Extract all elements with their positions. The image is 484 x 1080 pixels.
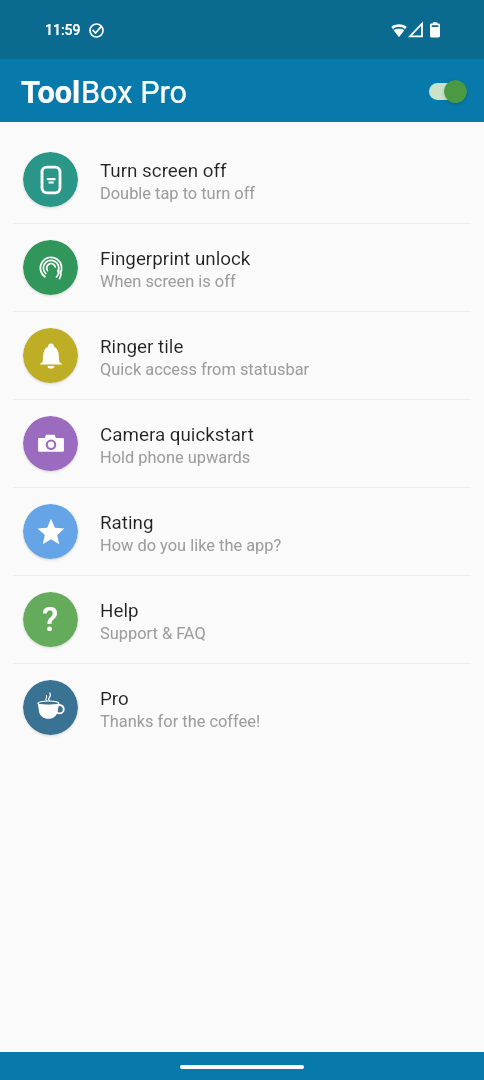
staticText: Turn screen off bbox=[100, 160, 227, 182]
staticText: Tool bbox=[21, 75, 81, 111]
staticText: Hold phone upwards bbox=[100, 448, 251, 467]
staticText: When screen is off bbox=[100, 272, 236, 291]
staticText: Thanks for the coffee! bbox=[100, 712, 261, 731]
button[interactable]: ? bbox=[0, 576, 484, 663]
staticText: ? bbox=[42, 600, 59, 639]
staticText: Double tap to turn off bbox=[100, 184, 256, 203]
staticText: Box Pro bbox=[81, 75, 188, 111]
staticText: Quick access from statusbar bbox=[100, 360, 310, 379]
staticText: 11:59 bbox=[45, 22, 81, 38]
staticText: Support & FAQ bbox=[100, 624, 206, 643]
staticText: Fingerprint unlock bbox=[100, 248, 251, 270]
button[interactable]: Rating bbox=[0, 488, 484, 575]
button[interactable]: Fingerprint unlock bbox=[0, 224, 484, 311]
button[interactable]: Turn screen off bbox=[0, 136, 484, 223]
button[interactable]: Ringer tile bbox=[0, 312, 484, 399]
staticText: Camera quickstart bbox=[100, 424, 254, 446]
staticText: Pro bbox=[100, 688, 129, 710]
staticText: Help bbox=[100, 600, 139, 622]
staticText: Ringer tile bbox=[100, 336, 184, 358]
button[interactable]: Camera quickstart bbox=[0, 400, 484, 487]
button[interactable]: Enable service bbox=[415, 73, 467, 109]
staticText: How do you like the app? bbox=[100, 536, 282, 555]
staticText: Rating bbox=[100, 512, 154, 534]
button[interactable]: Pro bbox=[0, 664, 484, 751]
